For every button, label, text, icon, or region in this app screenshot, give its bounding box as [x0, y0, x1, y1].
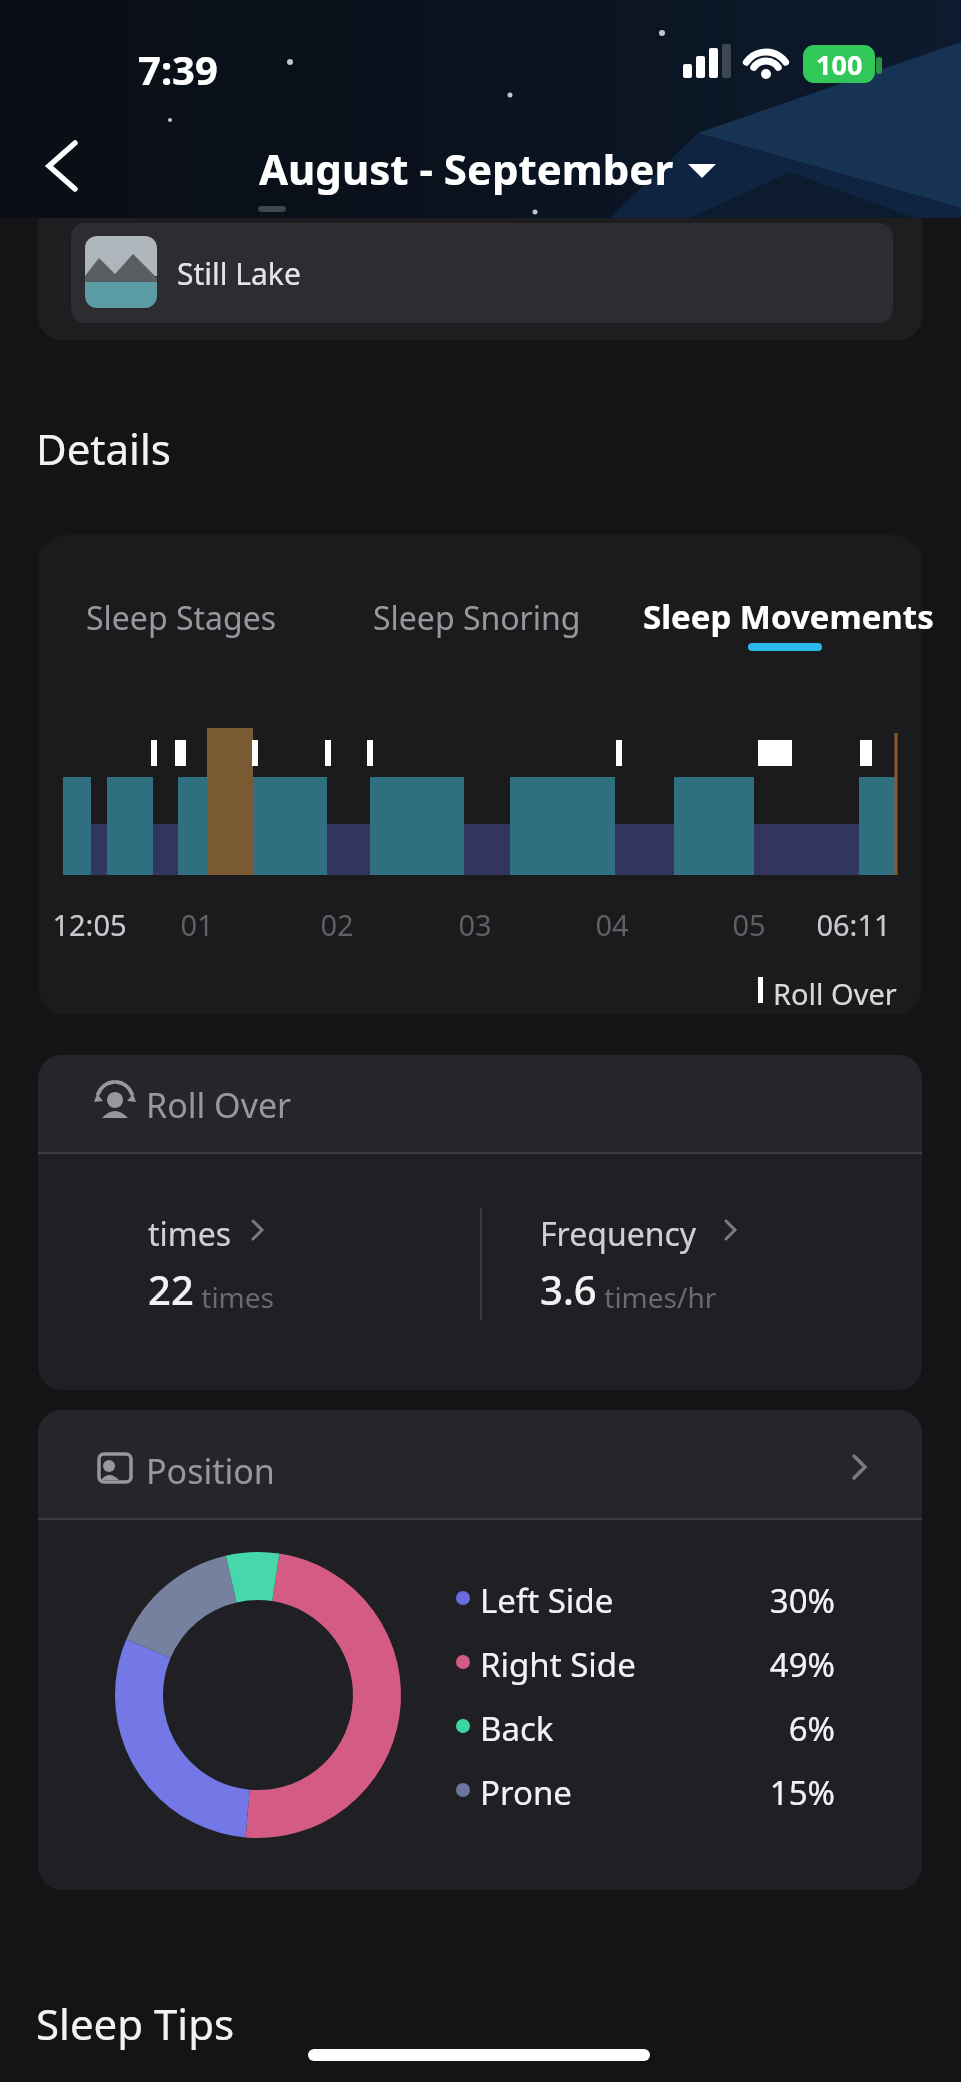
staticText: Still Lake: [177, 253, 301, 294]
staticText: Position: [146, 1448, 275, 1494]
staticText: 7:39: [138, 42, 218, 96]
staticText: 15%: [769, 1770, 835, 1815]
staticText: Roll Over: [773, 974, 897, 1013]
staticText: Frequency: [540, 1212, 697, 1256]
staticText: Prone: [480, 1770, 572, 1815]
staticText: Sleep Tips: [36, 1995, 235, 2052]
staticText: 30%: [769, 1578, 835, 1623]
staticText: Back: [480, 1706, 554, 1751]
staticText: 03: [458, 905, 492, 944]
staticText: 49%: [769, 1642, 835, 1687]
button[interactable]: [532, 1196, 762, 1326]
button[interactable]: [140, 1196, 350, 1326]
staticText: times: [194, 1278, 274, 1316]
staticText: 3.6: [540, 1262, 597, 1316]
button[interactable]: Still Lake: [38, 218, 922, 340]
staticText: 100: [816, 46, 863, 83]
staticText: 05: [732, 905, 766, 944]
staticText: 6%: [788, 1706, 835, 1751]
staticText: August - September: [259, 140, 674, 196]
staticText: Right Side: [480, 1642, 636, 1687]
staticText: 04: [595, 905, 629, 944]
button[interactable]: [38, 134, 88, 198]
staticText: times: [148, 1212, 232, 1256]
button[interactable]: August - September: [0, 140, 961, 196]
staticText: 02: [320, 905, 354, 944]
staticText: Details: [36, 420, 171, 477]
staticText: 06:11: [816, 905, 891, 944]
button[interactable]: [38, 1410, 922, 1890]
staticText: 22: [148, 1262, 194, 1316]
staticText: 12:05: [52, 905, 127, 944]
button[interactable]: [38, 1055, 922, 1390]
staticText: 01: [180, 905, 214, 944]
staticText: times/hr: [597, 1278, 717, 1316]
staticText: Left Side: [480, 1578, 614, 1623]
